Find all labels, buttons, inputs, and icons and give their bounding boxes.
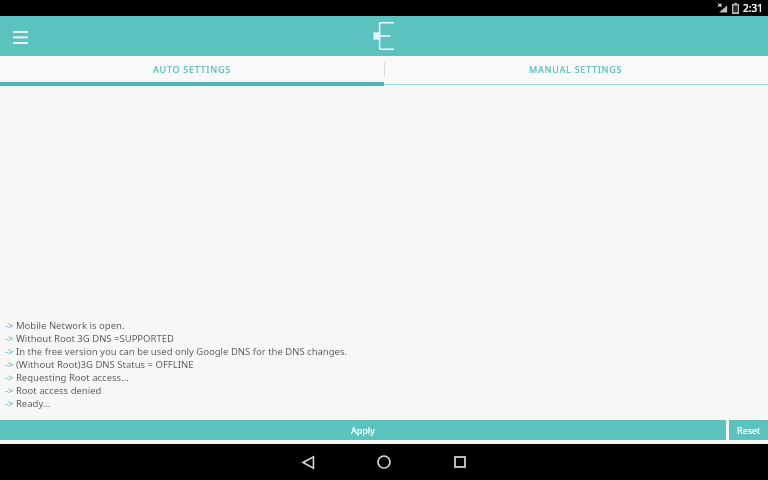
staticText: -> Requesting Root access...	[5, 371, 129, 384]
staticText: -> (Without Root)3G DNS Status = OFFLINE	[5, 358, 194, 371]
staticText: -> Without Root 3G DNS =SUPPORTED	[5, 332, 174, 345]
staticText: Apply	[351, 424, 375, 436]
button[interactable]: AUTO SETTINGS	[0, 56, 384, 82]
staticText: Reset	[737, 424, 761, 436]
button[interactable]: Home	[354, 444, 414, 480]
button[interactable]: MANUAL SETTINGS	[384, 56, 768, 82]
button[interactable]: Recent apps	[430, 444, 490, 480]
staticText: -> In the free version you can be used o…	[5, 345, 348, 358]
staticText: -> Ready...	[5, 397, 51, 410]
staticText: 2:31	[743, 1, 763, 15]
button[interactable]: Apply	[0, 420, 726, 440]
button[interactable]: Reset	[729, 420, 768, 440]
staticText: -> Root access denied	[5, 384, 102, 397]
button[interactable]: Back	[278, 444, 338, 480]
staticText: MANUAL SETTINGS	[529, 63, 623, 75]
button[interactable]: Open navigation menu	[8, 24, 32, 48]
staticText: -> Mobile Network is open.	[5, 319, 125, 332]
staticText: AUTO SETTINGS	[153, 63, 231, 75]
